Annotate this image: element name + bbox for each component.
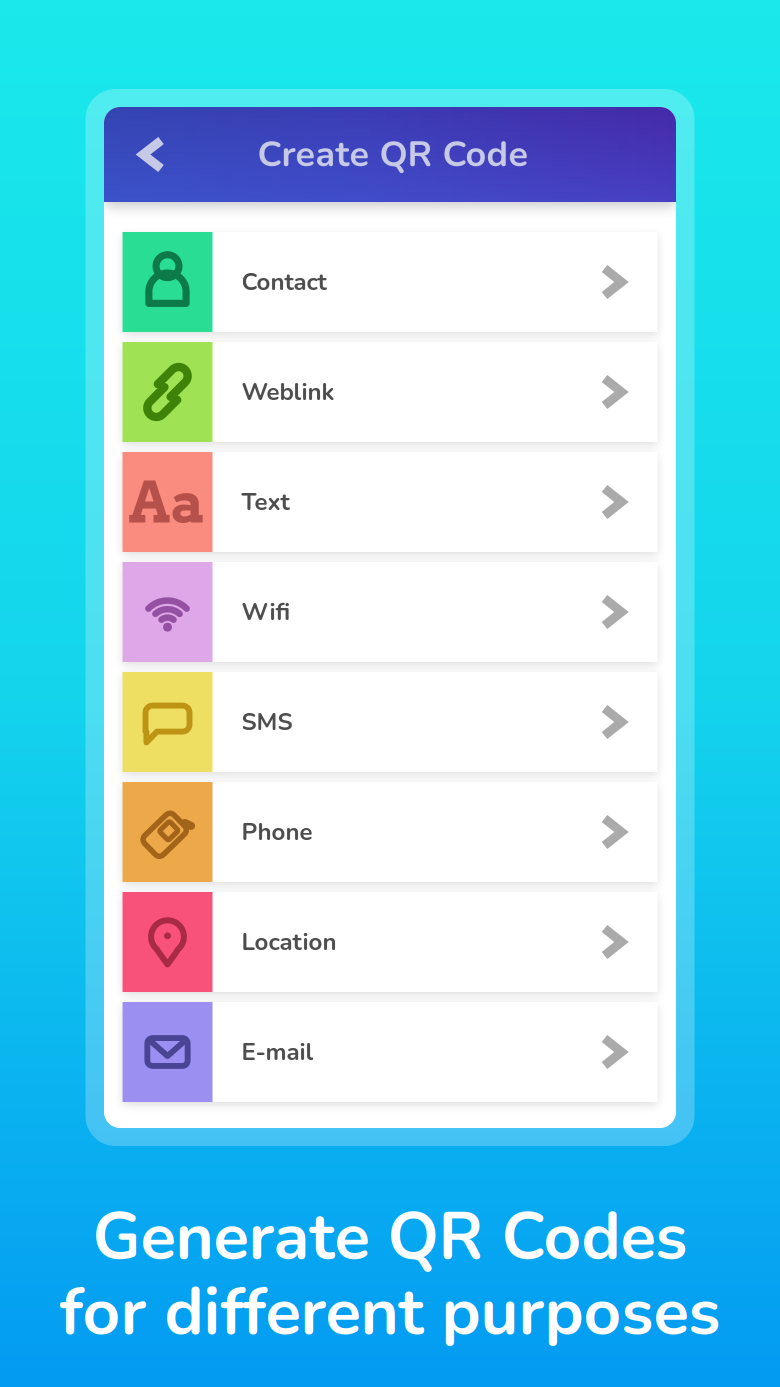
button[interactable]: SMS <box>122 672 657 772</box>
staticText: Wifi <box>241 596 290 628</box>
button[interactable]: Phone <box>122 782 657 882</box>
staticText: Location <box>241 926 336 958</box>
staticText: Weblink <box>241 376 334 408</box>
button[interactable]: Wifi <box>122 562 657 662</box>
button[interactable]: Back <box>104 107 180 202</box>
staticText: Text <box>241 486 289 518</box>
button[interactable]: Contact <box>122 232 657 332</box>
staticText: Create QR Code <box>257 130 528 179</box>
staticText: E-mail <box>241 1036 313 1068</box>
staticText: Generate QR Codes <box>92 1193 687 1282</box>
button[interactable]: Location <box>122 892 657 992</box>
staticText: SMS <box>241 706 292 738</box>
staticText: Contact <box>241 266 326 298</box>
button[interactable]: Aa <box>122 452 657 552</box>
button[interactable]: Weblink <box>122 342 657 442</box>
staticText: for different purposes <box>59 1268 720 1357</box>
staticText: Aa <box>128 467 206 537</box>
button[interactable]: E-mail <box>122 1002 657 1102</box>
staticText: Phone <box>241 816 312 848</box>
